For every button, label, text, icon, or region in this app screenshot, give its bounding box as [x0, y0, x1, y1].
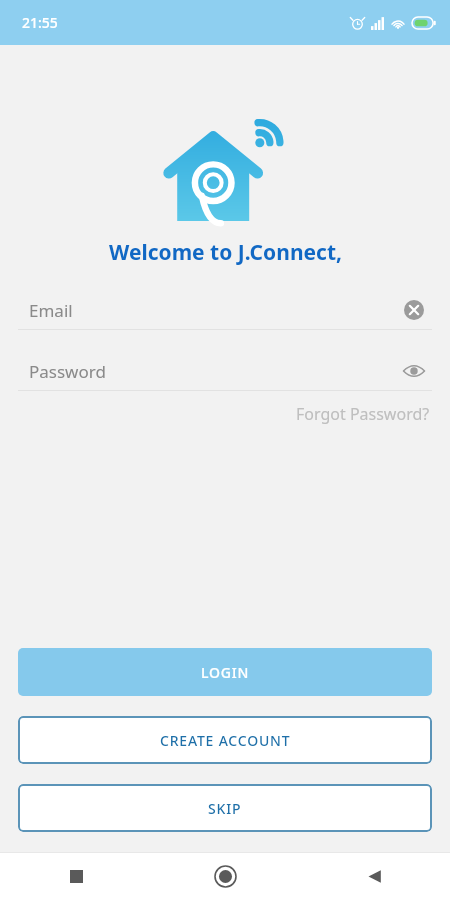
staticText: Forgot Password?	[296, 403, 430, 425]
button[interactable]: SKIP	[18, 784, 432, 832]
button[interactable]: Back	[354, 856, 394, 896]
staticText: 21:55	[22, 13, 58, 32]
staticText: SKIP	[208, 799, 242, 818]
staticText: CREATE ACCOUNT	[160, 731, 291, 750]
button[interactable]: Clear email	[396, 292, 432, 328]
button[interactable]: Show password	[396, 353, 432, 389]
staticText: Email	[29, 299, 73, 322]
button[interactable]: Email	[18, 291, 432, 330]
staticText: Password	[29, 360, 106, 383]
button[interactable]: CREATE ACCOUNT	[18, 716, 432, 764]
staticText: Welcome to J.Connect,	[109, 238, 342, 267]
button[interactable]: Home	[205, 856, 245, 896]
staticText: LOGIN	[201, 663, 250, 682]
button[interactable]: Recent apps	[56, 856, 96, 896]
button[interactable]: Password	[18, 352, 432, 391]
button[interactable]: LOGIN	[18, 648, 432, 696]
button[interactable]: Forgot Password?	[294, 399, 432, 429]
